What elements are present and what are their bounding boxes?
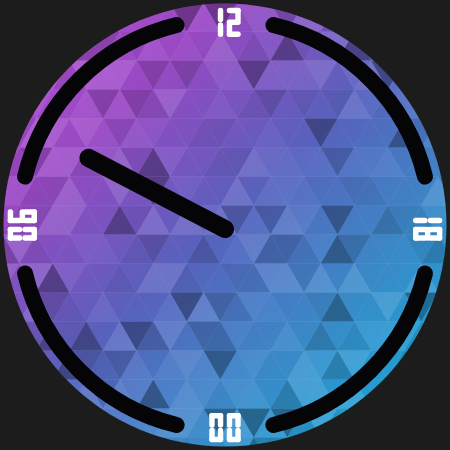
button[interactable]: Triangle gradient analog watch face [0, 0, 450, 450]
